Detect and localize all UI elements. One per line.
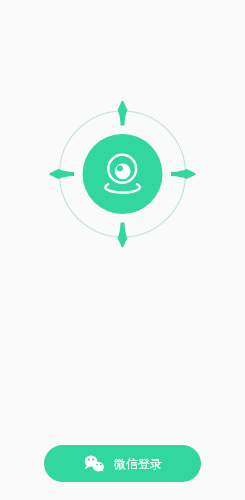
button[interactable]: 微信登录 WeChat login	[44, 445, 201, 482]
staticText: 微信登录	[114, 456, 162, 471]
